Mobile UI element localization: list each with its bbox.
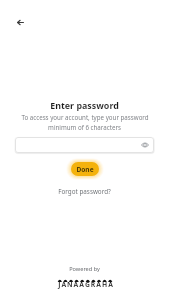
button[interactable]: Back <box>8 10 32 34</box>
staticText: To access your account, type your passwo… <box>21 113 149 121</box>
button[interactable]: Show password <box>15 137 154 153</box>
staticText: minimum of 6 characters <box>48 123 121 131</box>
staticText: JANAAGRAHA <box>58 280 114 289</box>
staticText: Powered by <box>69 265 100 273</box>
button[interactable]: Done <box>71 162 99 176</box>
staticText: Enter password <box>50 99 119 111</box>
button[interactable]: Show password <box>141 142 149 148</box>
staticText: Done <box>76 165 94 174</box>
staticText: Forgot password? <box>58 187 111 196</box>
button[interactable]: Forgot password? <box>52 185 117 198</box>
